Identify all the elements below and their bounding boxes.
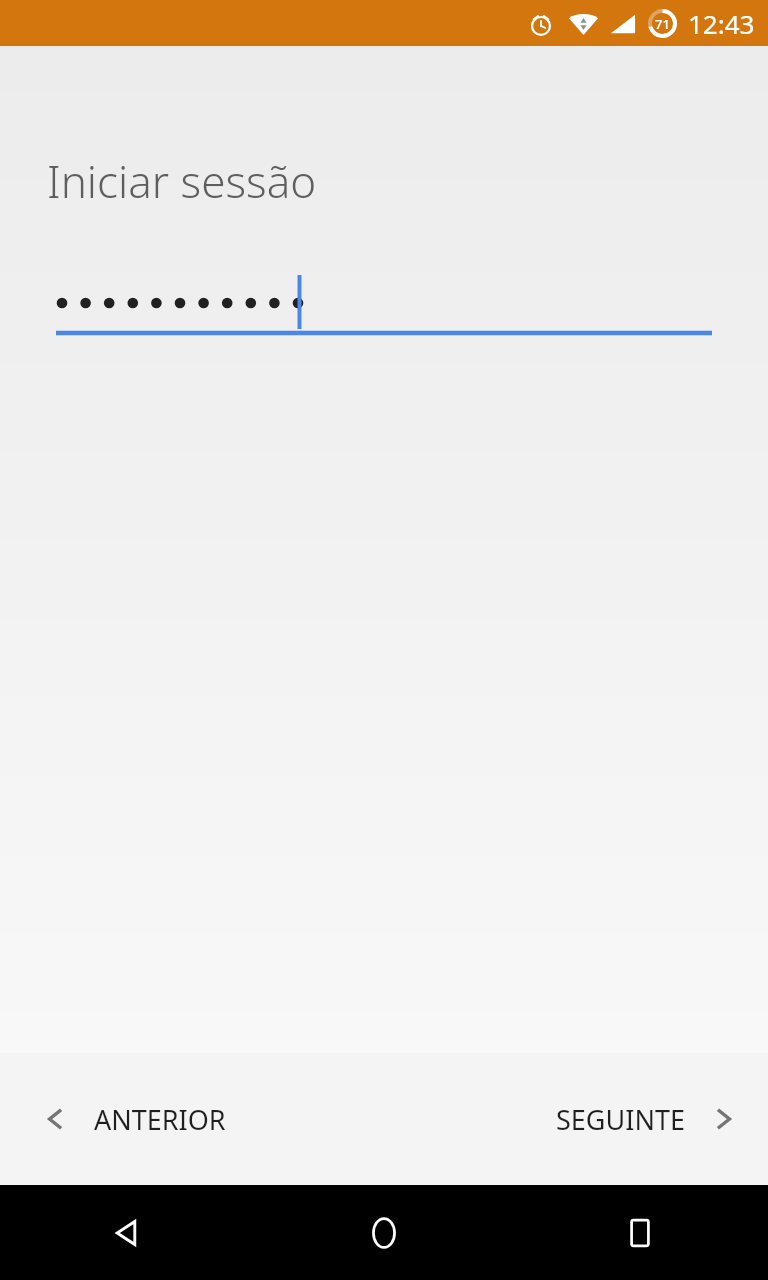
staticText: ANTERIOR <box>94 1101 226 1138</box>
staticText: Iniciar sessão <box>47 151 317 211</box>
button[interactable]: ANTERIOR <box>0 1053 256 1185</box>
button[interactable]: SEGUINTE <box>526 1053 768 1185</box>
button[interactable]: Home <box>256 1185 512 1280</box>
button[interactable]: Back <box>0 1185 256 1280</box>
staticText: 71 <box>655 15 670 33</box>
staticText: 12:43 <box>688 6 755 41</box>
button[interactable] <box>0 216 768 346</box>
staticText: SEGUINTE <box>556 1101 685 1138</box>
button[interactable]: Recent apps <box>512 1185 768 1280</box>
